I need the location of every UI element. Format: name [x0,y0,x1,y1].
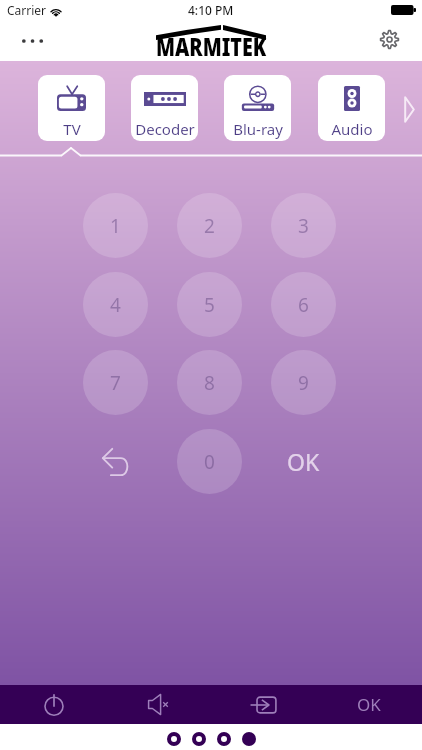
button[interactable]: Decoder [131,75,198,141]
button[interactable]: 4 [83,272,148,337]
button[interactable]: Back [83,429,148,494]
staticText: Carrier [7,2,47,18]
staticText: Blu-ray [233,119,283,139]
staticText: 7 [110,370,121,396]
staticText: 6 [298,292,309,318]
button[interactable]: Settings [374,24,404,54]
staticText: OK [357,693,381,716]
button[interactable]: OK [271,429,336,494]
button[interactable]: Menu [14,31,52,51]
button[interactable]: Power [0,685,105,724]
button[interactable]: 5 [177,272,242,337]
button[interactable]: 2 [177,193,242,258]
button[interactable]: Page 2 [192,732,206,746]
button[interactable]: 1 [83,193,148,258]
staticText: 9 [298,370,309,396]
staticText: TV [63,119,81,139]
button[interactable]: Input source [210,685,316,724]
button[interactable]: Mute [105,685,210,724]
button[interactable]: 9 [271,350,336,415]
staticText: 4 [110,292,121,318]
button[interactable]: 7 [83,350,148,415]
button[interactable]: 0 [177,429,242,494]
button[interactable]: Audio [318,75,385,141]
staticText: 1 [110,213,121,239]
button[interactable]: 3 [271,193,336,258]
staticText: 3 [298,213,309,239]
staticText: 2 [204,213,215,239]
button[interactable]: Page 4 [242,732,256,746]
button[interactable]: TV [38,75,105,141]
button[interactable]: Blu-ray [224,75,291,141]
staticText: Decoder [135,119,195,139]
staticText: 8 [204,370,215,396]
button[interactable]: OK [316,685,422,724]
button[interactable]: Page 1 [167,732,181,746]
staticText: 0 [204,449,215,475]
button[interactable]: 8 [177,350,242,415]
staticText: OK [287,446,320,477]
button[interactable]: 6 [271,272,336,337]
staticText: MARMITEK [156,30,267,63]
button[interactable]: Next devices [396,87,422,131]
staticText: 5 [204,292,215,318]
staticText: 4:10 PM [188,2,234,18]
button[interactable]: Page 3 [217,732,231,746]
staticText: Audio [331,119,373,139]
